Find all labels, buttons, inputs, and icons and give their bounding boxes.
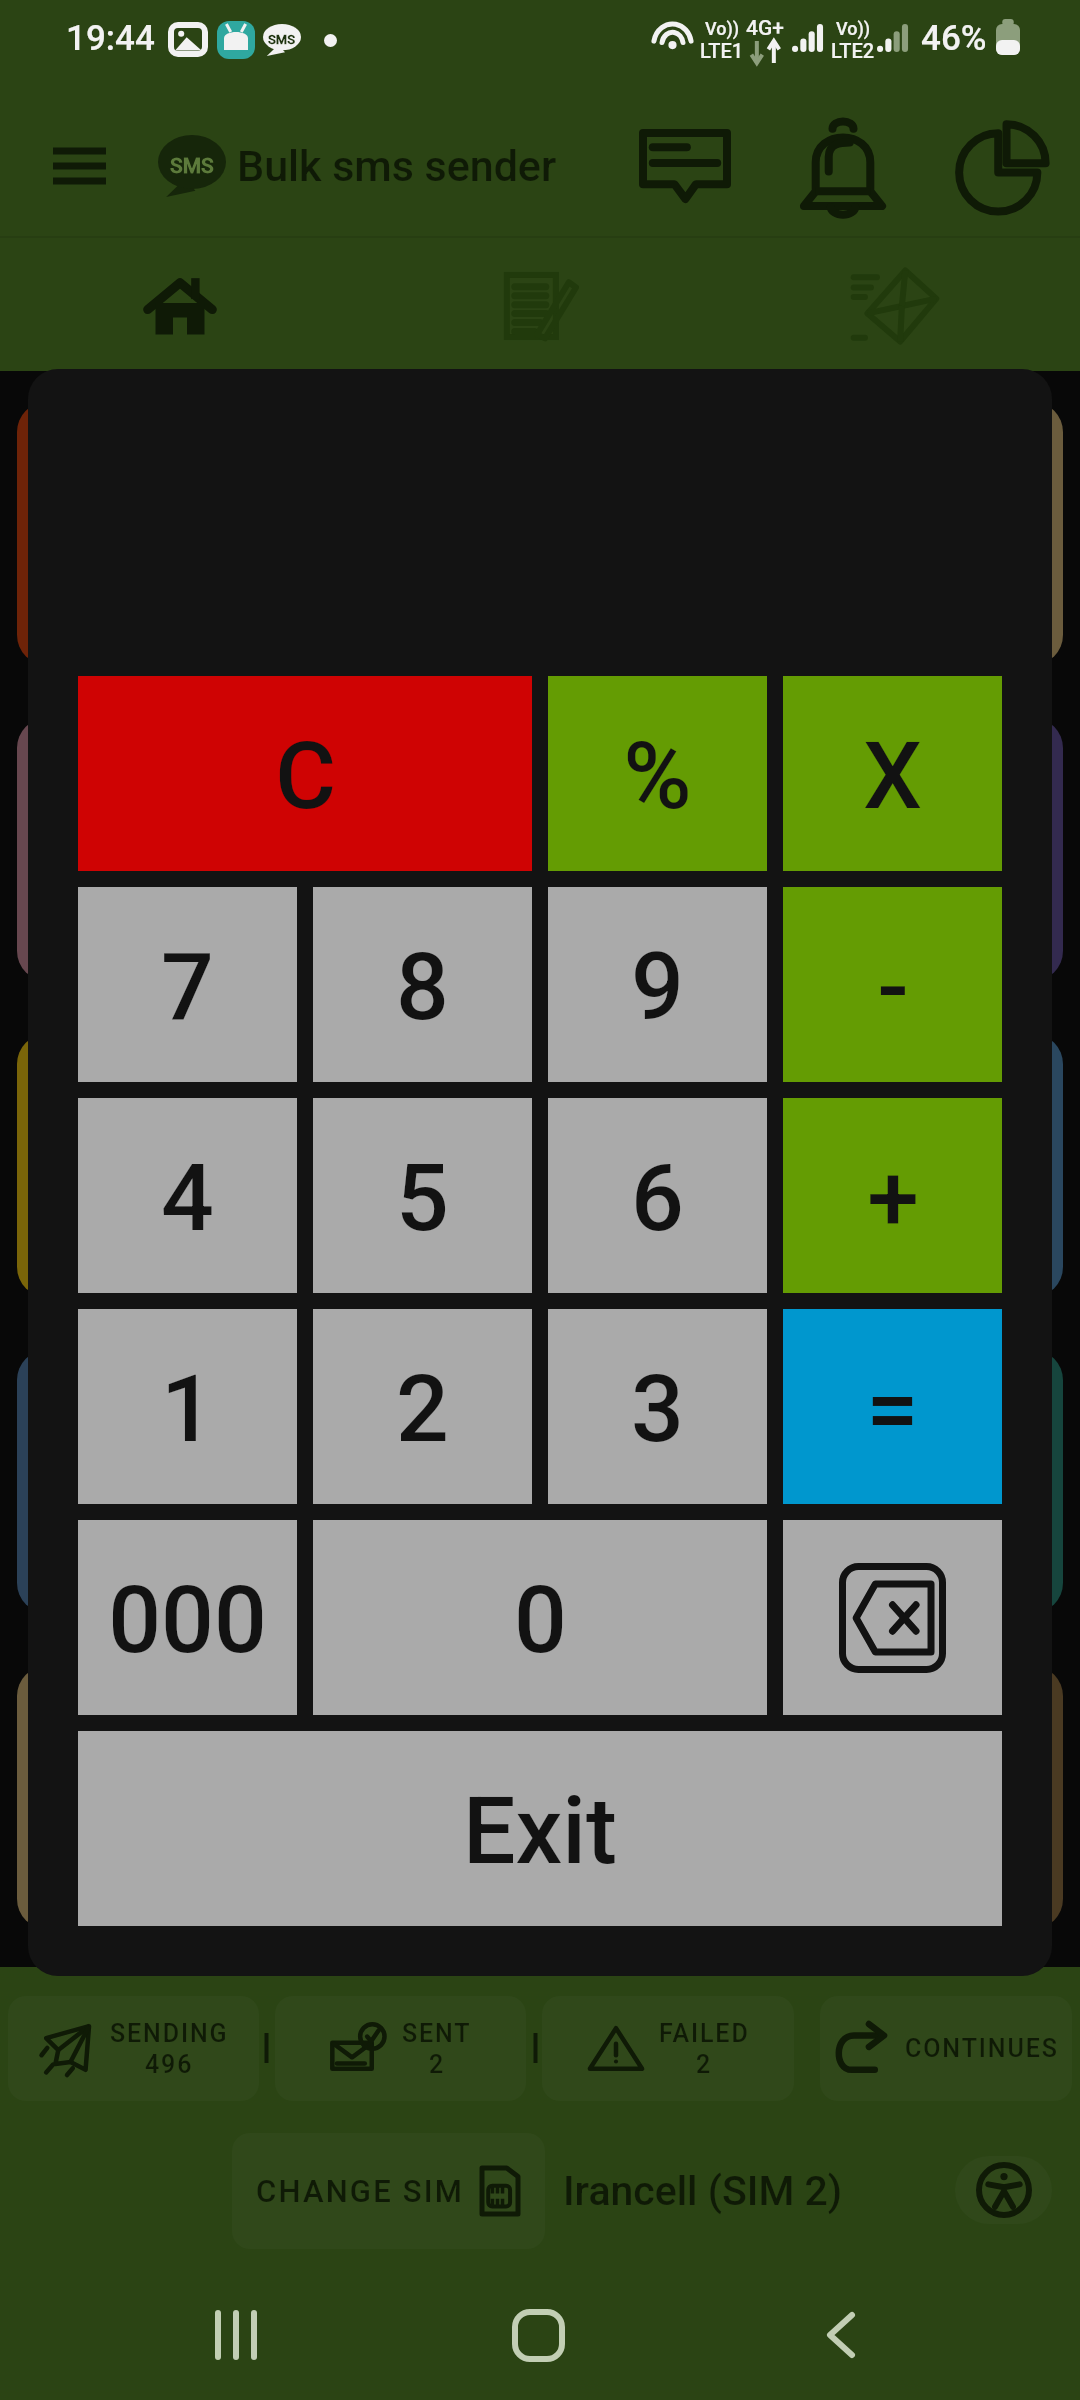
button[interactable]: Accessibility [955,2156,1052,2224]
button[interactable]: C [78,676,532,871]
staticText: 46% [921,18,987,59]
staticText: 2 [696,2050,713,2079]
button[interactable]: Messages [619,106,751,226]
staticText: 19:44 [66,18,155,59]
button[interactable]: 0 [313,1520,767,1715]
staticText: 3 [631,1355,684,1464]
button[interactable]: 000 [78,1520,297,1715]
button[interactable]: Recent apps [161,2280,311,2390]
staticText: Vo)) [836,18,871,39]
button[interactable]: 5 [313,1098,532,1293]
button[interactable]: % [548,676,767,871]
button[interactable]: 6 [548,1098,767,1293]
button[interactable]: = [783,1309,1002,1504]
button[interactable]: 3 [548,1309,767,1504]
button[interactable]: Open navigation menu [24,111,134,221]
staticText: 2 [429,2050,446,2079]
staticText: CHANGE SIM [256,2173,465,2209]
staticText: 4G+ [746,16,784,41]
staticText: 0 [514,1566,567,1675]
button[interactable]: CONTINUES [820,1996,1072,2101]
button[interactable]: Compose message [465,246,615,366]
button[interactable]: 8 [313,887,532,1082]
staticText: FAILED [659,2019,750,2048]
staticText: SMS [170,154,214,179]
staticText: 2 [396,1355,449,1464]
button[interactable]: Send messages [820,246,970,366]
button[interactable]: - [783,887,1002,1082]
staticText: 1 [161,1355,214,1464]
staticText: % [623,722,692,831]
staticText: 4 [161,1144,214,1253]
staticText: Vo)) [705,18,740,39]
button[interactable]: Back [766,2280,916,2390]
button[interactable]: Home [463,2280,613,2390]
button[interactable]: CHANGE SIM [232,2133,545,2249]
staticText: CONTINUES [905,2034,1059,2063]
staticText: LTE1 [700,39,744,62]
button[interactable]: Home [105,246,255,366]
staticText: 8 [396,933,449,1042]
staticText: 000 [108,1566,267,1675]
button[interactable]: FAILED [542,1996,794,2101]
staticText: X [863,722,922,831]
staticText: 9 [631,933,684,1042]
button[interactable]: 9 [548,887,767,1082]
button[interactable]: Exit [78,1731,1002,1926]
button[interactable]: 1 [78,1309,297,1504]
button[interactable]: 7 [78,887,297,1082]
staticText: SMS [268,32,296,47]
staticText: C [275,722,336,831]
staticText: - [877,933,909,1042]
button[interactable]: + [783,1098,1002,1293]
staticText: SENT [402,2019,472,2048]
staticText: Bulk sms sender [237,141,557,191]
staticText: Irancell (SIM 2) [563,2167,843,2215]
button[interactable]: Backspace [783,1520,1002,1715]
staticText: LTE2 [831,39,875,62]
button[interactable]: 2 [313,1309,532,1504]
staticText: 5 [396,1144,449,1253]
button[interactable]: Notifications [777,106,909,226]
staticText: 6 [631,1144,684,1253]
staticText: 496 [145,2050,194,2079]
staticText: = [866,1355,919,1464]
staticText: SENDING [110,2019,229,2048]
button[interactable]: Statistics [935,106,1067,226]
staticText: Exit [463,1777,617,1886]
button[interactable]: SENT [275,1996,526,2101]
staticText: + [867,1144,919,1253]
button[interactable]: SENDING [8,1996,259,2101]
staticText: 7 [161,933,214,1042]
button[interactable]: X [783,676,1002,871]
button[interactable]: 4 [78,1098,297,1293]
